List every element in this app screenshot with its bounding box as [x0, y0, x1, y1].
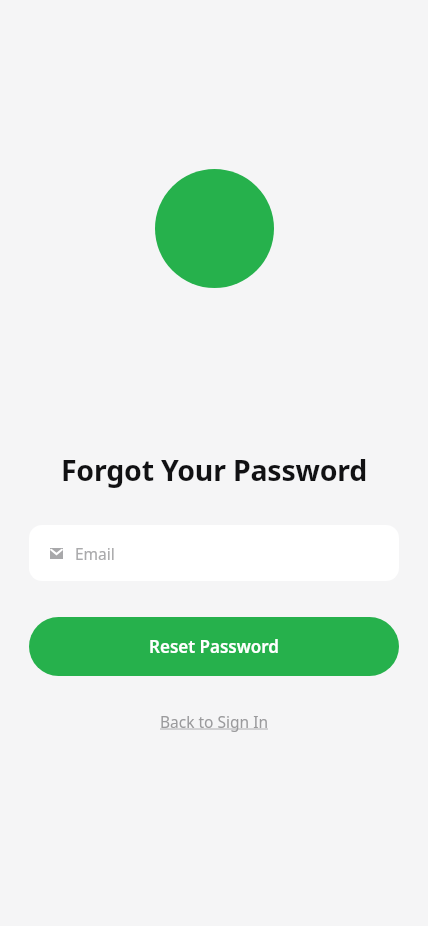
staticText: Forgot Your Password — [0, 451, 428, 490]
other: Email — [50, 548, 63, 559]
staticText: Back to Sign In — [160, 711, 269, 732]
button[interactable]: Reset Password — [29, 617, 399, 676]
staticText: Email — [75, 543, 115, 564]
button[interactable]: Back to Sign In — [154, 708, 275, 735]
button[interactable]: Email — [29, 525, 399, 581]
staticText: Reset Password — [149, 635, 279, 658]
